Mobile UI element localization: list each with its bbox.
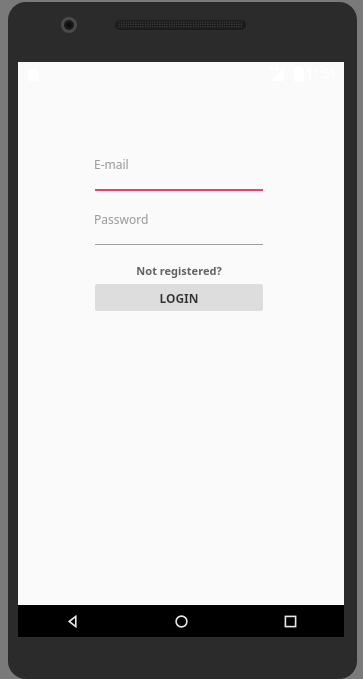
button[interactable]: Password <box>94 211 262 241</box>
button[interactable]: Home <box>126 605 236 637</box>
staticText: Password <box>94 211 149 227</box>
button[interactable]: Back <box>18 605 126 637</box>
staticText: LOGIN <box>159 290 199 306</box>
button[interactable]: E-mail <box>94 156 262 186</box>
button[interactable]: Recent apps <box>236 605 344 637</box>
staticText: Not registered? <box>136 263 222 278</box>
button[interactable]: Not registered? <box>95 263 263 278</box>
button[interactable]: LOGIN <box>95 284 263 311</box>
staticText: E-mail <box>94 156 129 172</box>
